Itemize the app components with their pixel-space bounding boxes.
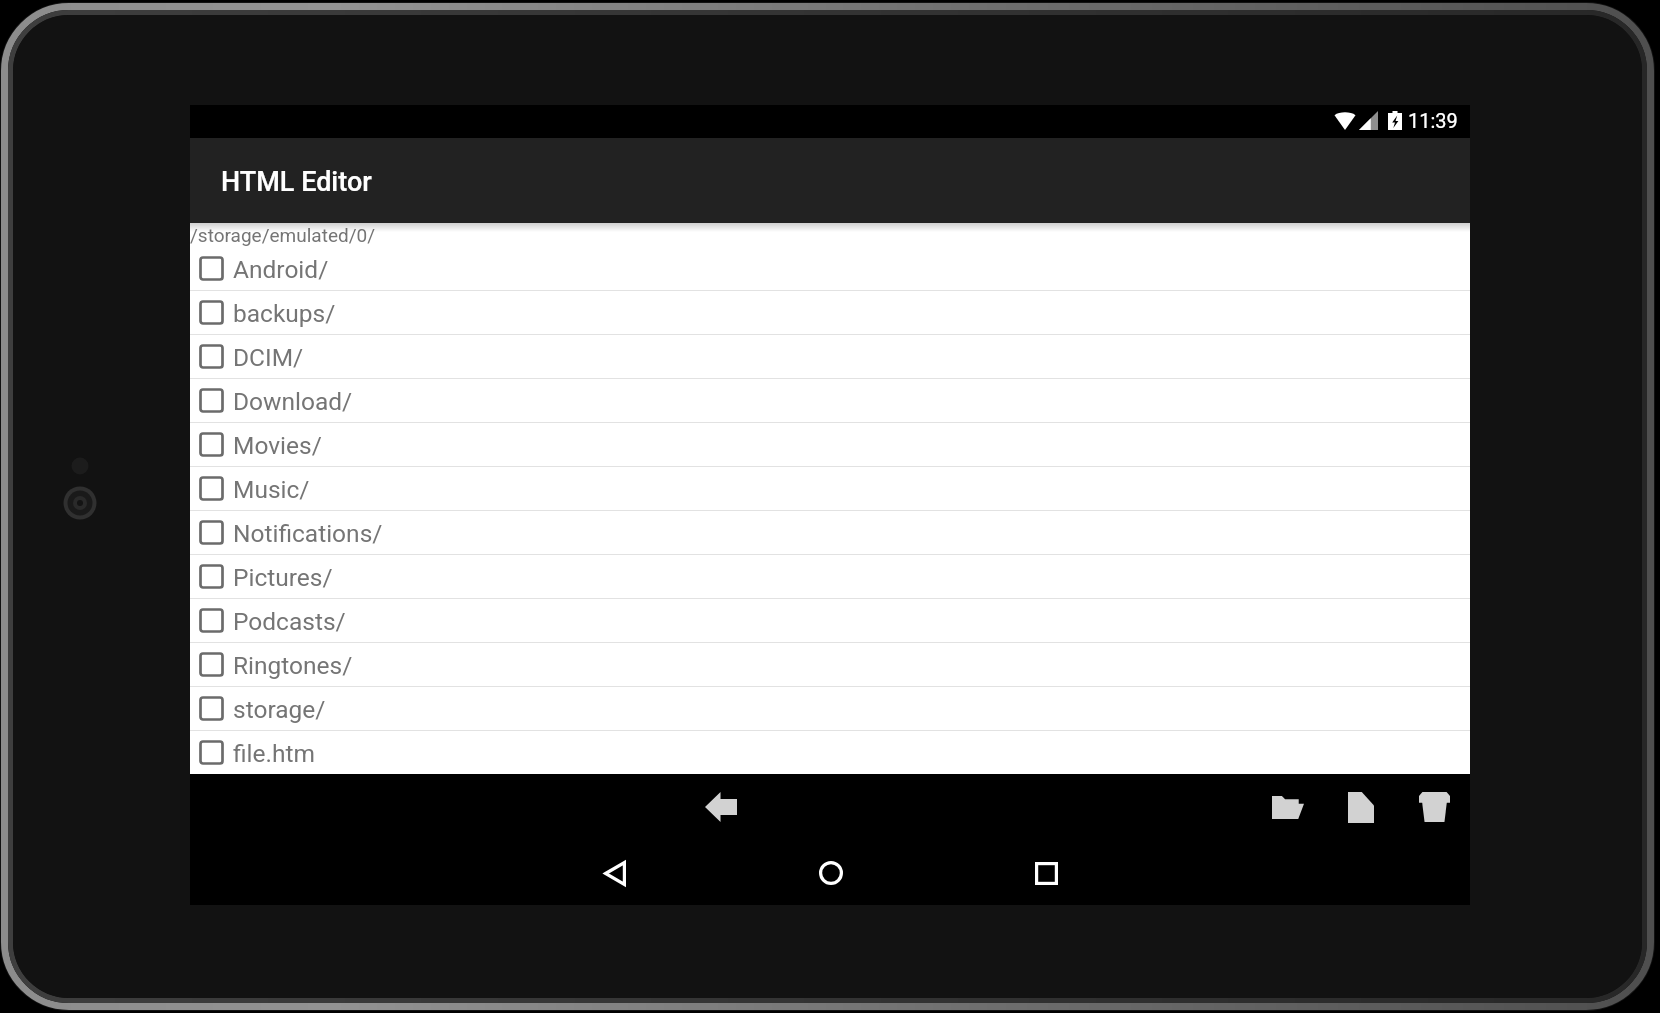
button[interactable]: Notifications/ (190, 511, 1470, 554)
button[interactable]: Delete (1405, 778, 1463, 836)
staticText: Pictures/ (233, 563, 333, 592)
button[interactable]: Download/ (190, 379, 1470, 422)
button[interactable]: Music/ (190, 467, 1470, 510)
button[interactable]: Recents (1016, 843, 1076, 903)
button[interactable]: file.htm (190, 731, 1470, 774)
staticText: Ringtones/ (233, 651, 353, 680)
staticText: 11:39 (1408, 109, 1458, 132)
staticText: DCIM/ (233, 343, 304, 372)
button[interactable]: Up one level (692, 778, 750, 836)
staticText: /storage/emulated/0/ (190, 224, 376, 246)
button[interactable]: Movies/ (190, 423, 1470, 466)
staticText: storage/ (233, 695, 326, 724)
button[interactable]: Podcasts/ (190, 599, 1470, 642)
button[interactable]: Pictures/ (190, 555, 1470, 598)
staticText: HTML Editor (221, 166, 372, 198)
staticText: file.htm (233, 739, 315, 768)
staticText: Podcasts/ (233, 607, 346, 636)
staticText: Movies/ (233, 431, 322, 460)
button[interactable]: backups/ (190, 291, 1470, 334)
button[interactable]: New file (1332, 778, 1390, 836)
button[interactable]: DCIM/ (190, 335, 1470, 378)
staticText: Music/ (233, 475, 310, 504)
button[interactable]: Ringtones/ (190, 643, 1470, 686)
button[interactable]: Back (585, 843, 645, 903)
button[interactable]: Android/ (190, 247, 1470, 290)
staticText: backups/ (233, 299, 336, 328)
button[interactable]: Home (801, 843, 861, 903)
staticText: Android/ (233, 255, 329, 284)
button[interactable]: New folder (1259, 778, 1317, 836)
staticText: Download/ (233, 387, 353, 416)
staticText: Notifications/ (233, 519, 383, 548)
button[interactable]: storage/ (190, 687, 1470, 730)
